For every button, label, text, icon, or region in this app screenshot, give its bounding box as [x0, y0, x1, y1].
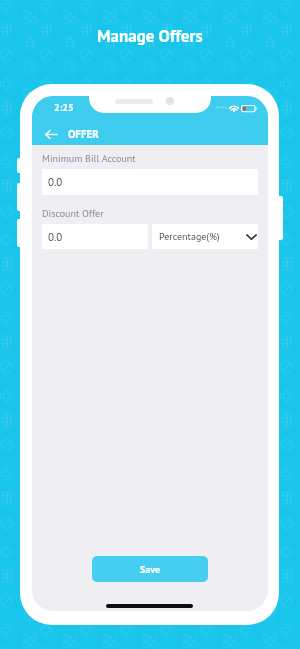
staticText: 0.0 [48, 230, 63, 244]
staticText: Save [140, 563, 161, 576]
staticText: OFFER [68, 127, 99, 141]
button[interactable]: 0.0 [42, 169, 258, 195]
staticText: Minimum Bill Account [42, 152, 136, 165]
staticText: Manage Offers [97, 25, 203, 47]
staticText: 0.0 [48, 175, 63, 189]
button[interactable]: Back [43, 126, 59, 142]
button[interactable]: Percentage(%) [152, 224, 258, 249]
button[interactable]: Save [92, 556, 208, 582]
button[interactable]: 0.0 [42, 224, 148, 249]
staticText: 2:25 [54, 101, 74, 114]
staticText: Percentage(%) [159, 230, 220, 243]
button[interactable]: Back [32, 123, 268, 145]
staticText: Discount Offer [42, 207, 104, 220]
